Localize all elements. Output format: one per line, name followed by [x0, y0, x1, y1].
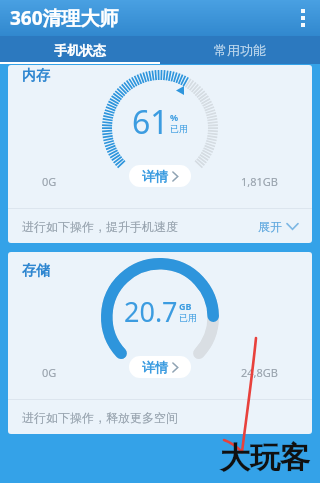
staticText: 内存 — [22, 67, 50, 85]
staticText: 1,81GB — [241, 174, 278, 189]
staticText: 进行如下操作，释放更多空间 — [22, 410, 178, 425]
button[interactable]: 进行如下操作，提升手机速度 — [8, 209, 312, 243]
staticText: 详情 — [142, 359, 168, 375]
staticText: 24,8GB — [241, 365, 278, 380]
staticText: 展开 — [258, 219, 282, 234]
button[interactable]: 进行如下操作，释放更多空间 — [8, 400, 312, 434]
staticText: 360清理大师 — [10, 5, 119, 31]
staticText: 20.7 — [124, 293, 178, 330]
button[interactable]: 常用功能 — [160, 36, 320, 64]
button[interactable]: More options — [286, 0, 320, 36]
staticText: 已用 — [179, 312, 197, 323]
button[interactable]: 详情 — [129, 165, 191, 187]
staticText: 存储 — [22, 262, 50, 280]
staticText: 详情 — [142, 168, 168, 184]
staticText: GB — [179, 300, 192, 312]
staticText: 常用功能 — [214, 42, 266, 58]
staticText: % — [170, 111, 179, 123]
staticText: 大玩客 — [220, 439, 310, 477]
staticText: 已用 — [170, 123, 188, 134]
button[interactable]: 手机状态 — [0, 36, 160, 64]
staticText: 0G — [42, 365, 57, 380]
staticText: 手机状态 — [54, 42, 106, 58]
button[interactable]: 详情 — [129, 356, 191, 378]
staticText: 61 — [132, 100, 169, 144]
staticText: 0G — [42, 174, 57, 189]
staticText: 进行如下操作，提升手机速度 — [22, 219, 178, 234]
